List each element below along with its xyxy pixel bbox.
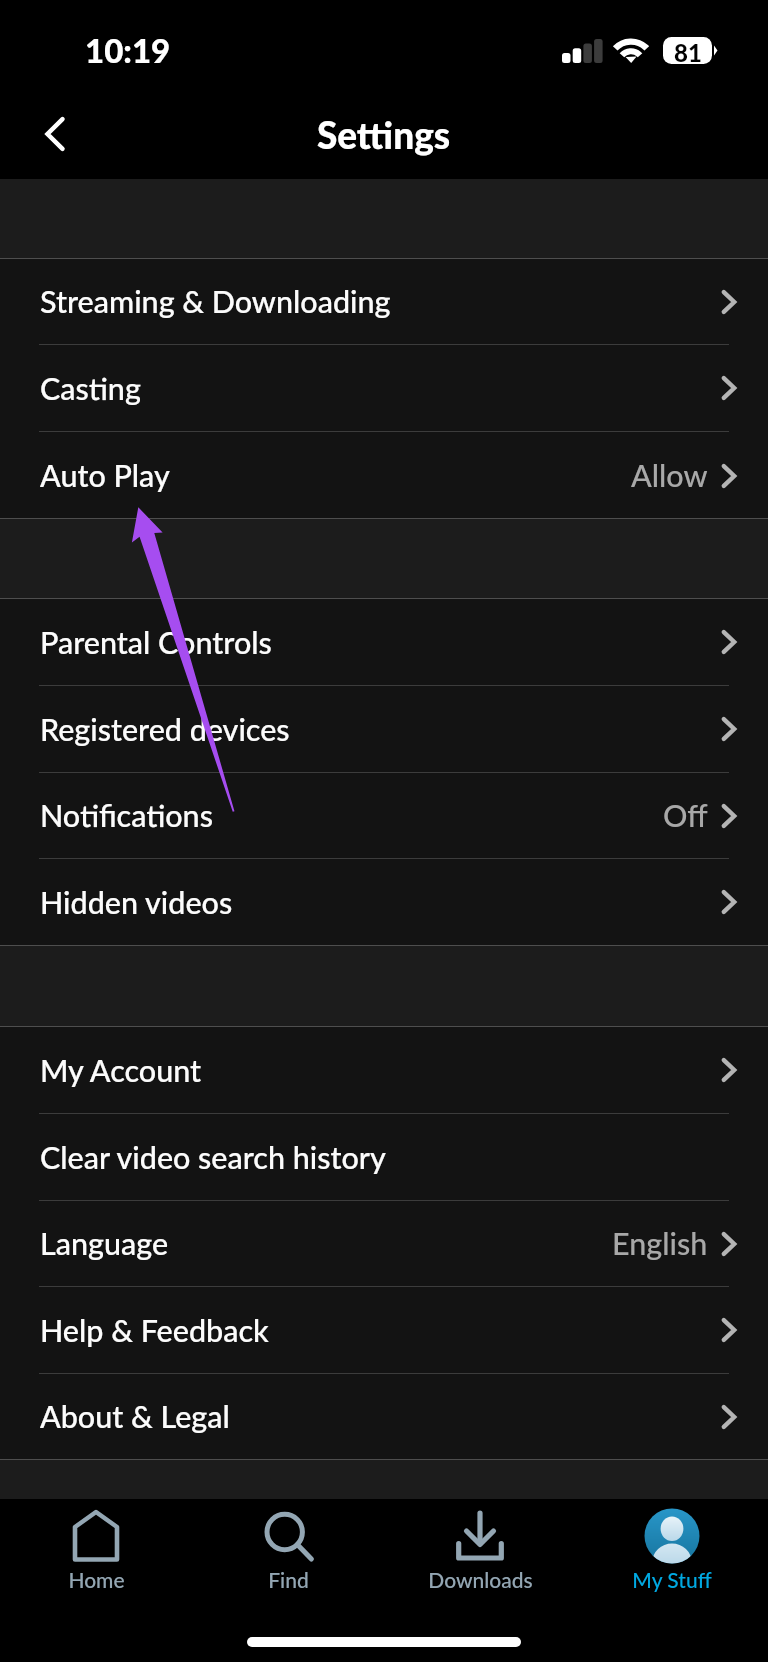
staticText: Registered devices [40, 711, 290, 748]
button[interactable]: Clear video search history [0, 1114, 768, 1200]
staticText: Find [268, 1567, 309, 1592]
staticText: 81 [674, 38, 702, 67]
staticText: Home [68, 1567, 125, 1592]
staticText: Parental Controls [40, 624, 272, 661]
button[interactable]: My Stuff [576, 1499, 768, 1619]
staticText: Allow [631, 457, 708, 494]
staticText: Off [663, 797, 708, 834]
staticText: Hidden videos [40, 884, 233, 921]
staticText: English [612, 1225, 708, 1262]
button[interactable]: Home [0, 1499, 192, 1619]
button[interactable]: Parental Controls [0, 599, 768, 685]
staticText: Streaming & Downloading [40, 283, 391, 320]
button[interactable]: Auto Play [0, 432, 768, 518]
button[interactable]: About & Legal [0, 1374, 768, 1459]
staticText: About & Legal [40, 1398, 230, 1435]
staticText: My Account [40, 1052, 202, 1089]
button[interactable]: Language [0, 1201, 768, 1286]
button[interactable]: Back [26, 105, 84, 163]
button[interactable]: Find [192, 1499, 384, 1619]
button[interactable]: Downloads [384, 1499, 576, 1619]
staticText: Language [40, 1225, 169, 1262]
button[interactable]: My Account [0, 1027, 768, 1113]
staticText: Downloads [428, 1567, 533, 1592]
staticText: Casting [40, 370, 141, 407]
staticText: Help & Feedback [40, 1312, 269, 1349]
button[interactable]: Streaming & Downloading [0, 259, 768, 344]
button[interactable]: Casting [0, 345, 768, 431]
staticText: My Stuff [632, 1567, 712, 1592]
button[interactable]: Notifications [0, 773, 768, 858]
staticText: 10:19 [85, 30, 171, 70]
button[interactable]: Hidden videos [0, 859, 768, 945]
staticText: Clear video search history [40, 1139, 386, 1176]
button[interactable]: Help & Feedback [0, 1287, 768, 1373]
button[interactable]: Registered devices [0, 686, 768, 772]
staticText: Settings [317, 112, 451, 156]
staticText: Auto Play [40, 457, 170, 494]
staticText: Notifications [40, 797, 213, 834]
